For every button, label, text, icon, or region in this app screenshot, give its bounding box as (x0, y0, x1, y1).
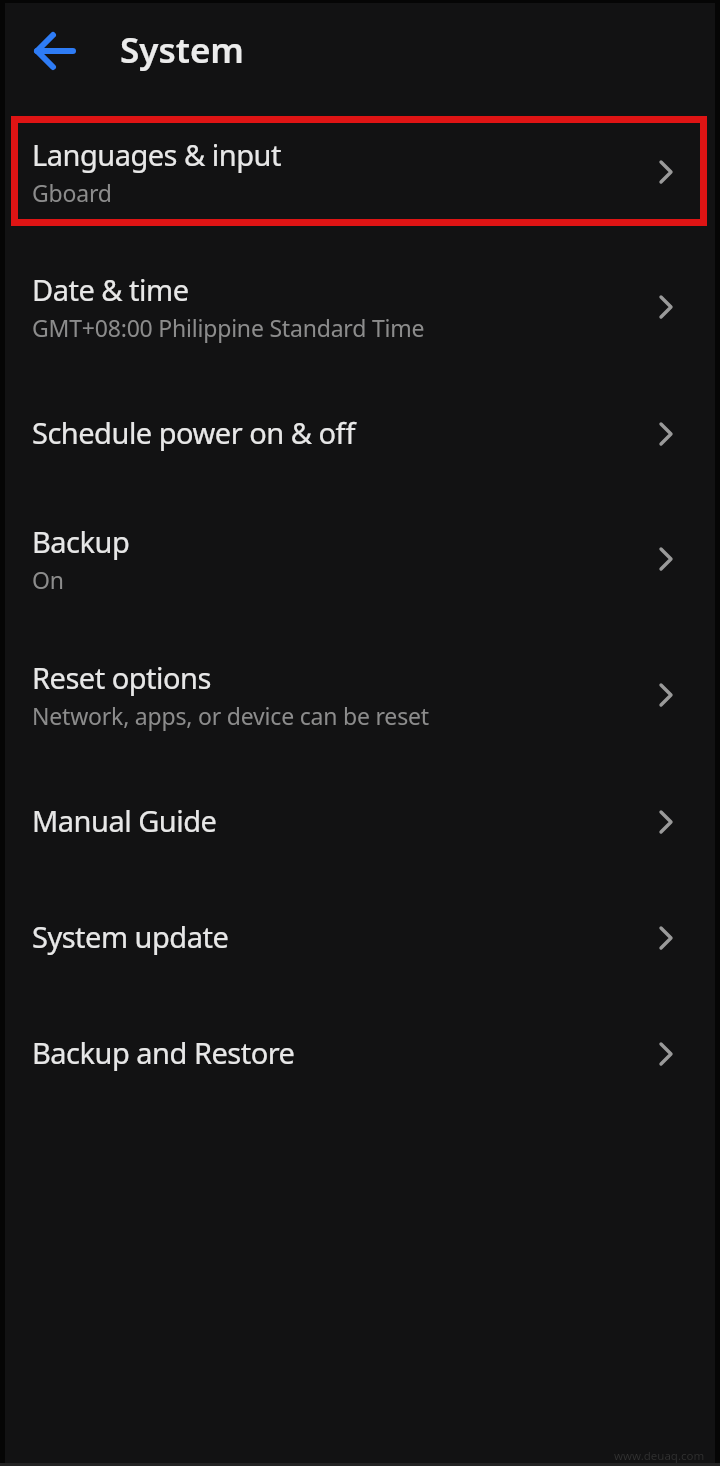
staticText: Backup (32, 522, 130, 561)
button[interactable] (0, 505, 720, 613)
button[interactable] (0, 396, 720, 472)
button[interactable] (0, 900, 720, 976)
staticText: Schedule power on & off (32, 413, 355, 452)
staticText: Languages & input (32, 135, 281, 174)
staticText: Reset options (32, 658, 211, 697)
staticText: GMT+08:00 Philippine Standard Time (32, 312, 425, 343)
staticText: Date & time (32, 270, 189, 309)
button[interactable] (0, 253, 720, 361)
button[interactable] (0, 1016, 720, 1092)
button[interactable] (0, 784, 720, 860)
staticText: System update (32, 917, 229, 956)
staticText: Network, apps, or device can be reset (32, 700, 429, 731)
staticText: Backup and Restore (32, 1033, 295, 1072)
staticText: Gboard (32, 177, 112, 208)
staticText: www.deuaq.com (614, 1448, 705, 1464)
button[interactable] (0, 641, 720, 749)
button[interactable] (0, 118, 720, 226)
staticText: System (120, 26, 244, 74)
staticText: On (32, 564, 64, 595)
button[interactable] (27, 23, 83, 79)
staticText: Manual Guide (32, 801, 217, 840)
